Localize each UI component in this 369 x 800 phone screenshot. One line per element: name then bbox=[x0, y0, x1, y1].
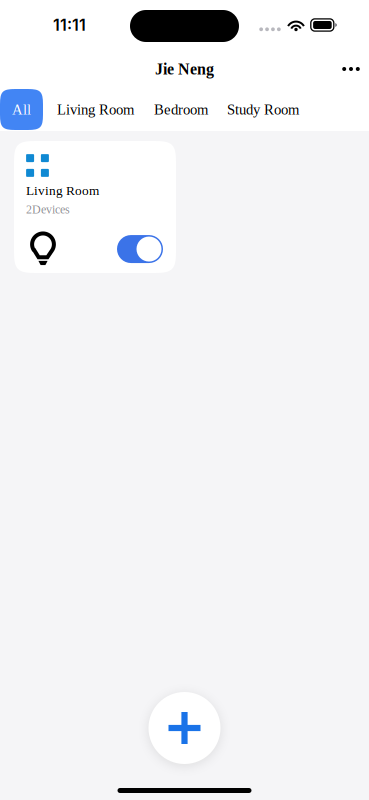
staticText: Jie Neng bbox=[155, 60, 214, 78]
button[interactable]: Living Room bbox=[14, 141, 176, 273]
button[interactable]: Add device bbox=[148, 692, 220, 764]
button[interactable]: Bedroom bbox=[134, 89, 208, 130]
staticText: Bedroom bbox=[154, 101, 208, 118]
button[interactable]: Toggle Living Room lights bbox=[117, 234, 163, 262]
button[interactable]: All bbox=[0, 89, 43, 130]
staticText: Living Room bbox=[57, 101, 134, 118]
button[interactable]: Study Room bbox=[208, 89, 299, 130]
staticText: Study Room bbox=[227, 101, 299, 118]
staticText: 11:11 bbox=[53, 15, 86, 35]
staticText: All bbox=[12, 101, 31, 118]
staticText: 2Devices bbox=[26, 203, 70, 216]
button[interactable]: More options bbox=[333, 50, 369, 88]
button[interactable]: Living Room bbox=[43, 89, 134, 130]
staticText: Living Room bbox=[26, 183, 99, 198]
